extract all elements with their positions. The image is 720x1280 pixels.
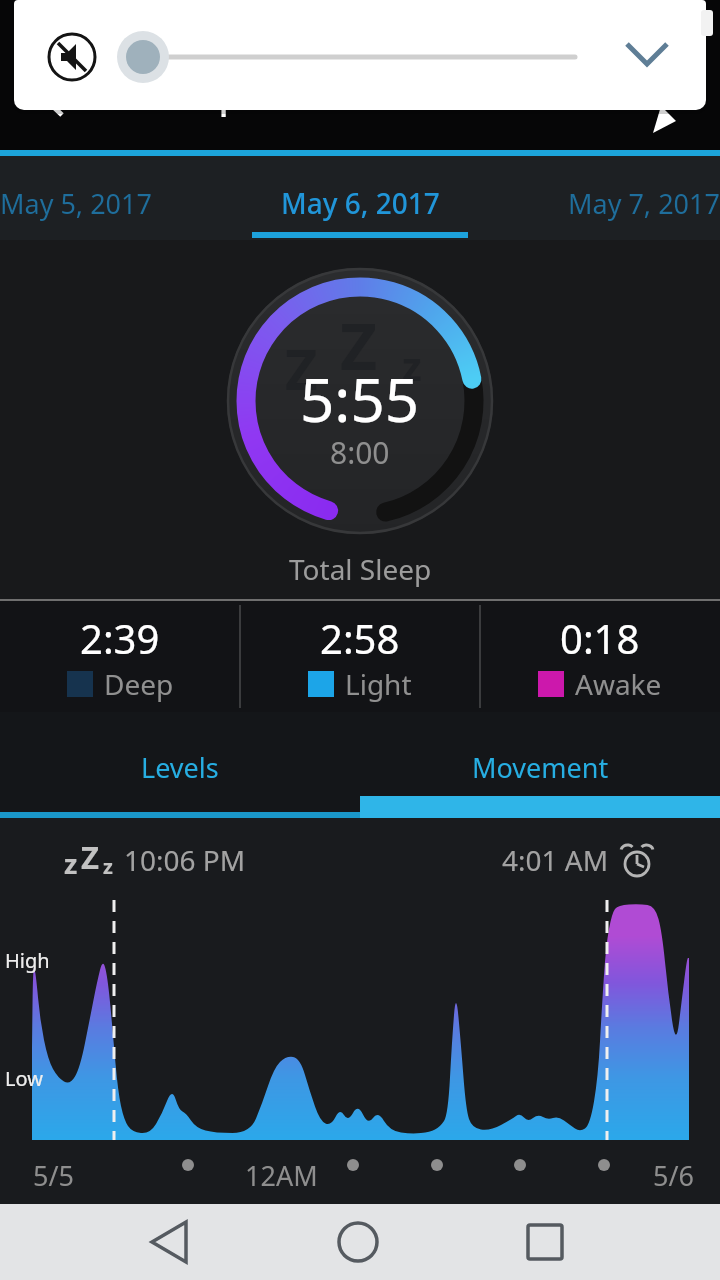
- button[interactable]: [523, 1220, 567, 1264]
- staticText: 4:01 AM: [502, 841, 609, 879]
- staticText: Movement: [472, 749, 609, 786]
- button[interactable]: [336, 1220, 380, 1264]
- staticText: 5:55: [300, 358, 420, 440]
- staticText: Levels: [141, 749, 219, 786]
- button[interactable]: [640, 90, 684, 138]
- staticText: May 5, 2017: [0, 185, 152, 222]
- staticText: z: [402, 338, 422, 392]
- button[interactable]: Movement: [360, 712, 720, 818]
- button[interactable]: [148, 1220, 192, 1264]
- button[interactable]: Levels: [0, 712, 360, 818]
- button[interactable]: 2:58: [240, 601, 480, 712]
- button[interactable]: 2:39: [0, 601, 240, 712]
- staticText: 2:39: [80, 611, 160, 665]
- staticText: Low: [5, 1065, 43, 1092]
- staticText: Awake: [575, 665, 662, 703]
- staticText: z: [103, 853, 113, 880]
- staticText: 12AM: [245, 1157, 318, 1194]
- button[interactable]: May 6, 2017: [180, 160, 540, 240]
- staticText: High: [5, 947, 50, 974]
- staticText: Total Sleep: [289, 550, 432, 588]
- staticText: 8:00: [330, 432, 390, 473]
- staticText: 5/6: [653, 1157, 694, 1194]
- staticText: Deep: [104, 665, 174, 703]
- button[interactable]: [48, 33, 96, 81]
- staticText: Z: [285, 330, 318, 406]
- button[interactable]: [621, 30, 677, 84]
- staticText: z: [64, 845, 78, 882]
- staticText: 10:06 PM: [124, 841, 246, 879]
- staticText: May 6, 2017: [281, 184, 440, 222]
- button[interactable]: [110, 30, 590, 84]
- staticText: May 7, 2017: [568, 185, 720, 222]
- staticText: 2:58: [320, 611, 400, 665]
- staticText: Z: [340, 302, 378, 389]
- button[interactable]: 0:18: [480, 601, 720, 712]
- staticText: Z: [81, 836, 99, 878]
- staticText: 0:18: [560, 611, 640, 665]
- staticText: 5/5: [33, 1157, 74, 1194]
- staticText: Light: [345, 665, 412, 703]
- button[interactable]: [36, 75, 78, 117]
- staticText: Sleep: [148, 70, 242, 119]
